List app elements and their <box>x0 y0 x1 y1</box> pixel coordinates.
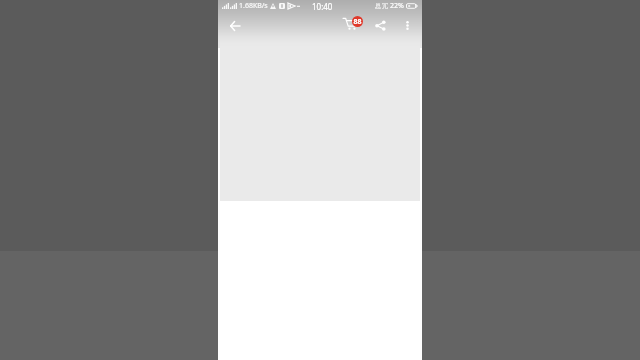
staticText: 冗 <box>382 2 388 10</box>
staticText: 10:40 <box>312 1 333 12</box>
button[interactable]: Shopping cart, 88 items <box>340 12 367 39</box>
staticText: 88 <box>353 17 362 27</box>
button[interactable]: Back <box>221 12 248 39</box>
button[interactable]: Share <box>367 12 394 39</box>
staticText: 22% <box>390 1 404 11</box>
staticText: 1.68KB/s <box>239 1 268 11</box>
staticText: 总 <box>375 2 381 10</box>
button[interactable]: More options <box>394 12 421 39</box>
